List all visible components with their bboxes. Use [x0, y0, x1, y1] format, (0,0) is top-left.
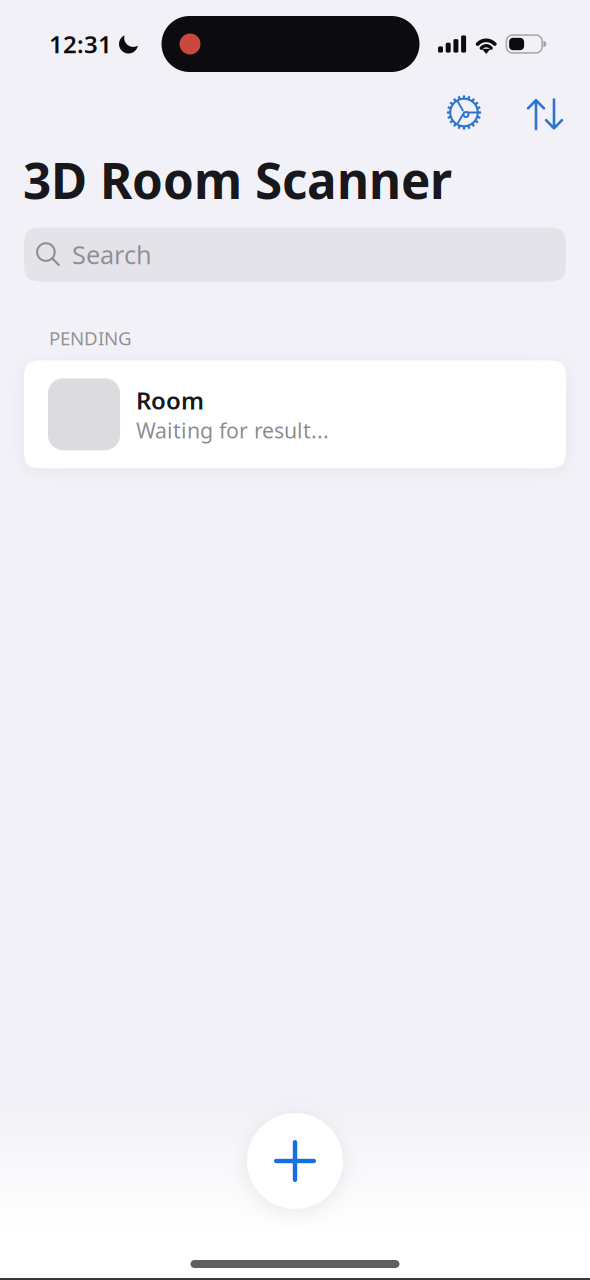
staticText: Waiting for result...: [136, 416, 329, 444]
staticText: 3D Room Scanner: [23, 147, 452, 212]
button[interactable]: Room: [24, 360, 566, 468]
staticText: 12:31: [49, 28, 112, 60]
button[interactable]: New scan: [247, 1113, 343, 1209]
button[interactable]: Sort: [523, 92, 567, 136]
staticText: Room: [136, 384, 204, 416]
button[interactable]: Settings: [444, 92, 488, 136]
staticText: PENDING: [49, 325, 132, 350]
staticText: Search: [72, 238, 152, 271]
button[interactable]: Search: [24, 227, 566, 281]
